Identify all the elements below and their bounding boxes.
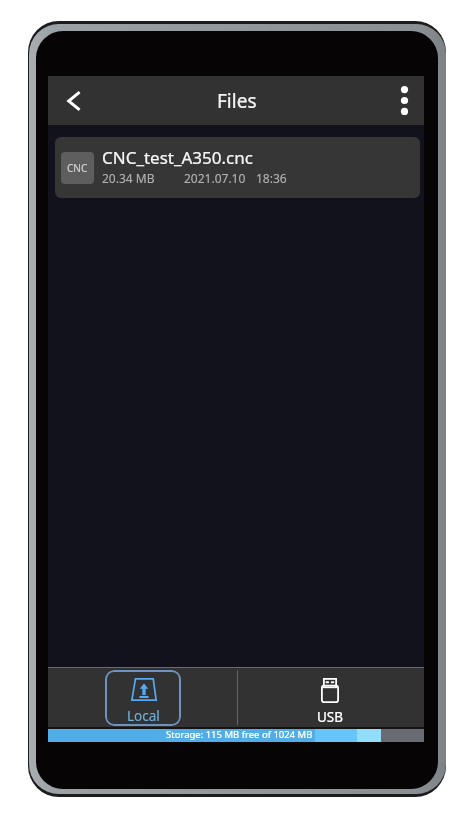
button[interactable]: CNC bbox=[55, 137, 420, 198]
staticText: CNC_test_A350.cnc bbox=[102, 146, 253, 169]
staticText: 20.34 MB bbox=[102, 170, 155, 186]
staticText: 18:36 bbox=[256, 170, 287, 186]
button[interactable]: More options bbox=[384, 76, 424, 125]
button[interactable]: Back bbox=[50, 76, 98, 125]
staticText: USB bbox=[317, 708, 344, 726]
button[interactable]: Local bbox=[105, 670, 181, 726]
staticText: Storage: 115 MB free of 1024 MB bbox=[166, 728, 313, 741]
staticText: CNC bbox=[67, 161, 88, 175]
staticText: Files bbox=[217, 88, 257, 114]
staticText: 2021.07.10 bbox=[184, 170, 246, 186]
button[interactable]: USB bbox=[292, 670, 368, 726]
staticText: Local bbox=[127, 707, 160, 725]
